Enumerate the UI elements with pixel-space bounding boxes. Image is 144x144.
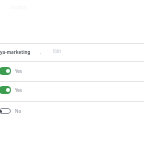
- button[interactable]: On: [0, 62, 144, 81]
- other: Off: [0, 108, 11, 114]
- staticText: ya-marketing: [0, 49, 31, 55]
- button[interactable]: Off: [0, 102, 144, 121]
- staticText: Yes: [15, 87, 23, 93]
- button[interactable]: ya-marketing: [0, 44, 144, 61]
- staticText: No: [15, 108, 22, 114]
- button[interactable]: On: [0, 82, 144, 101]
- staticText: Edit: [53, 48, 62, 54]
- other: On: [0, 67, 11, 75]
- other: On: [0, 86, 11, 94]
- staticText: Yes: [15, 68, 23, 74]
